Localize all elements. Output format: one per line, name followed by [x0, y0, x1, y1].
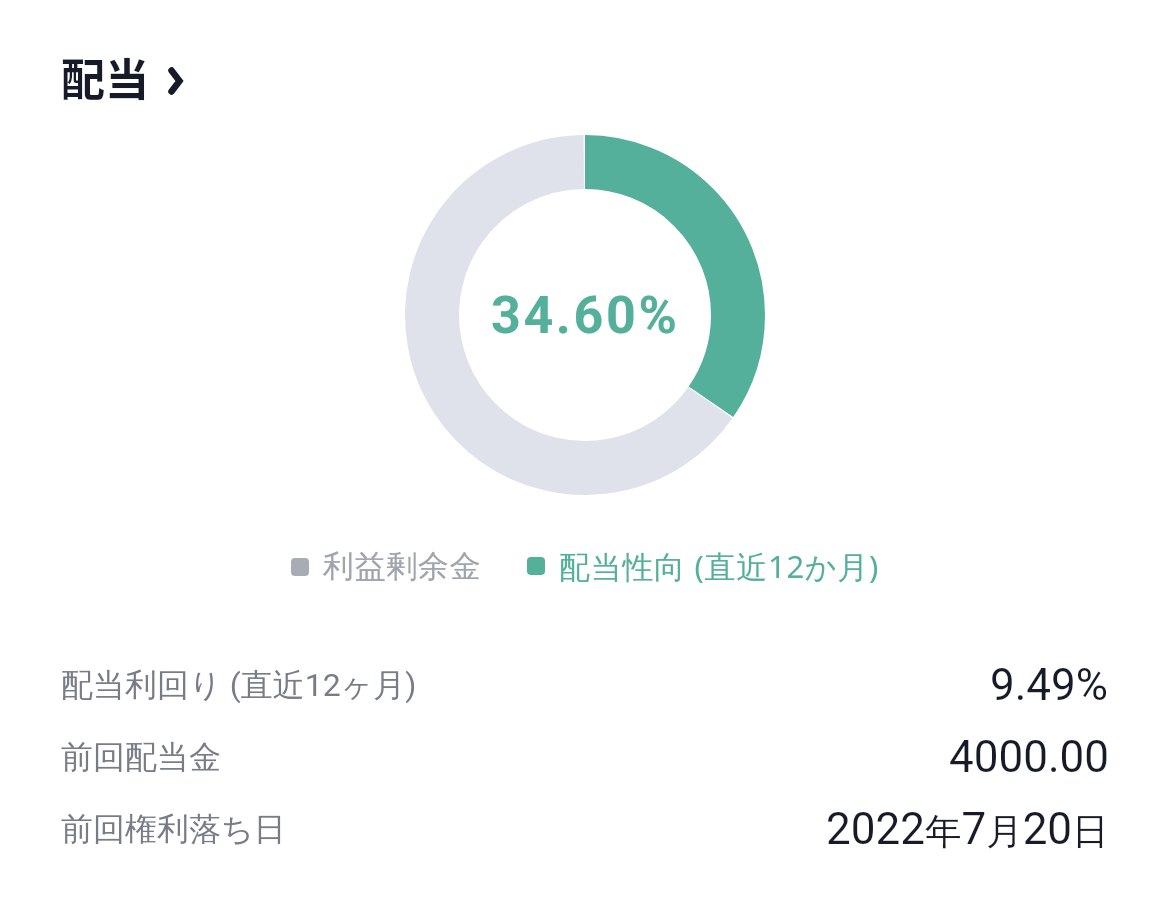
staticText: 34.60%	[491, 285, 680, 346]
button[interactable]: 前回配当金	[0, 721, 1169, 793]
staticText: 配当	[61, 45, 149, 109]
staticText: 2022年7月20日	[826, 803, 1109, 855]
staticText: 配当利回り (直近12ヶ月)	[61, 665, 417, 705]
button[interactable]: 配当利回り (直近12ヶ月)	[0, 649, 1169, 721]
button[interactable]: 利益剰余金	[291, 547, 482, 586]
staticText: 利益剰余金	[323, 547, 482, 586]
staticText: 配当性向 (直近12か月)	[559, 545, 879, 587]
staticText: 4000.00	[949, 731, 1109, 783]
staticText: 前回配当金	[61, 737, 221, 777]
staticText: 9.49%	[990, 659, 1109, 711]
button[interactable]: 配当の詳細を開く	[49, 39, 195, 115]
button[interactable]: 前回権利落ち日	[0, 793, 1169, 865]
button[interactable]: 配当性向 (直近12か月)	[527, 545, 879, 587]
staticText: 前回権利落ち日	[61, 809, 286, 849]
